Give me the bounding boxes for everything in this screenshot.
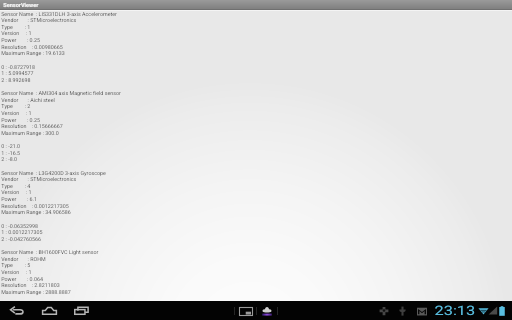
button[interactable]: Recent apps: [65, 301, 97, 320]
button[interactable]: New email: [417, 306, 427, 316]
button[interactable]: Screenshot: [238, 306, 253, 316]
button[interactable]: Back: [1, 301, 33, 320]
button[interactable]: Home: [33, 301, 65, 320]
button[interactable]: Sync: [379, 306, 389, 316]
button[interactable]: Downloads: [262, 306, 272, 316]
button[interactable]: USB connected: [399, 306, 406, 316]
